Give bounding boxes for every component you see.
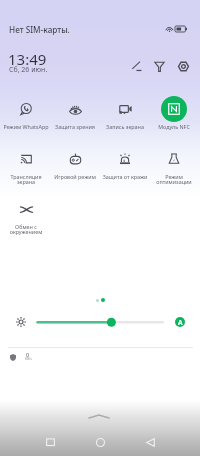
staticText: Режим WhatsApp bbox=[1, 123, 51, 130]
button[interactable]: Filter bbox=[152, 59, 166, 73]
staticText: Защита от кражи bbox=[100, 173, 150, 180]
staticText: Игровой режим bbox=[50, 173, 100, 180]
button[interactable]: Режим WhatsApp bbox=[1, 95, 51, 135]
button[interactable]: Игровой режим bbox=[50, 145, 100, 185]
button[interactable]: Back bbox=[140, 432, 160, 452]
staticText: Режим оптимизации bbox=[149, 173, 199, 186]
button[interactable]: Защита зрения bbox=[50, 95, 100, 135]
button[interactable]: Обмен с окружением bbox=[1, 195, 51, 235]
staticText: A bbox=[178, 318, 183, 327]
button[interactable]: Модуль NFC bbox=[149, 95, 199, 135]
button[interactable]: Auto brightness bbox=[175, 317, 185, 327]
staticText: Модуль NFC bbox=[149, 123, 199, 130]
button[interactable]: Режим оптимизации bbox=[149, 145, 199, 185]
staticText: Запись экрана bbox=[100, 123, 150, 130]
button[interactable]: Запись экрана bbox=[100, 95, 150, 135]
button[interactable]: Защита от кражи bbox=[100, 145, 150, 185]
button[interactable]: Security scan bbox=[9, 352, 18, 362]
button[interactable]: Edit bbox=[129, 59, 143, 73]
staticText: Обмен с окружением bbox=[1, 223, 51, 236]
staticText: 0 bbox=[26, 351, 30, 358]
button[interactable]: Brightness bbox=[34, 314, 166, 330]
button[interactable]: Recents bbox=[40, 432, 60, 452]
button[interactable]: Трансляция экрана bbox=[1, 145, 51, 185]
staticText: KB/s bbox=[25, 357, 32, 361]
staticText: 13:49 bbox=[8, 49, 47, 69]
staticText: Сб, 26 июн. bbox=[9, 65, 48, 75]
staticText: Нет SIM-карты. bbox=[9, 24, 70, 35]
staticText: Защита зрения bbox=[50, 123, 100, 130]
button[interactable]: Settings bbox=[176, 59, 190, 73]
staticText: Трансляция экрана bbox=[1, 173, 51, 186]
button[interactable]: Home bbox=[90, 432, 110, 452]
